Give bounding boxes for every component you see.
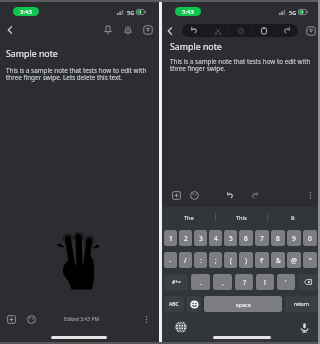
button[interactable]: Add [5, 313, 18, 326]
button[interactable]: ₹ [255, 252, 269, 268]
staticText: : [200, 256, 202, 265]
staticText: The [184, 214, 194, 221]
button[interactable]: This [215, 207, 267, 227]
staticText: ( [230, 256, 232, 265]
staticText: It [291, 214, 295, 221]
button[interactable]: ABC [164, 296, 184, 312]
staticText: ? [243, 278, 246, 287]
staticText: 5 [229, 234, 233, 243]
staticText: 2 [184, 234, 188, 243]
staticText: 6 [244, 234, 248, 243]
staticText: @ [291, 256, 297, 265]
button[interactable]: 8 [271, 230, 285, 246]
staticText: 3:43 [182, 8, 194, 16]
button[interactable]: ! [256, 274, 274, 290]
staticText: ABC [169, 301, 179, 308]
button[interactable]: Pin note [100, 22, 115, 37]
staticText: ; [215, 256, 217, 265]
button[interactable]: : [194, 252, 207, 268]
button[interactable]: Archive [303, 23, 318, 38]
button[interactable]: ( [224, 252, 237, 268]
button[interactable]: Backspace [298, 274, 318, 290]
button[interactable]: Background options [25, 313, 38, 326]
staticText: This [236, 214, 247, 221]
button[interactable]: 5 [224, 230, 237, 246]
staticText: . [200, 278, 202, 287]
button[interactable]: ? [235, 274, 253, 290]
staticText: 3 [199, 234, 203, 243]
button[interactable]: , [213, 274, 232, 290]
button[interactable]: Archive [140, 22, 155, 37]
button[interactable]: Copy [229, 24, 252, 37]
button[interactable]: Add [171, 190, 182, 201]
button[interactable]: 0 [303, 230, 317, 246]
button[interactable]: ) [239, 252, 253, 268]
button[interactable]: Background options [189, 190, 200, 201]
staticText: 5G [127, 9, 135, 17]
button[interactable]: 3 [194, 230, 207, 246]
staticText: 4 [214, 234, 218, 243]
staticText: & [276, 256, 281, 265]
button[interactable]: @ [287, 252, 301, 268]
staticText: 7 [260, 234, 264, 243]
button[interactable]: Back [2, 22, 17, 37]
button[interactable]: Voice input [297, 320, 311, 334]
staticText: 1 [169, 234, 173, 243]
button[interactable]: Reminder [120, 22, 135, 37]
button[interactable]: . [191, 274, 210, 290]
staticText: ' [285, 278, 287, 287]
button[interactable]: Undo [182, 24, 206, 37]
button[interactable]: It [267, 207, 319, 227]
button[interactable]: Redo [249, 190, 260, 201]
button[interactable]: More options [305, 190, 316, 201]
button[interactable]: return [285, 296, 318, 312]
button[interactable]: 4 [209, 230, 222, 246]
button[interactable]: 1 [164, 230, 177, 246]
button[interactable]: Emoji [187, 296, 201, 312]
staticText: 3:43 [20, 8, 32, 16]
staticText: space [236, 301, 251, 308]
button[interactable]: 7 [255, 230, 269, 246]
staticText: #+= [172, 279, 181, 286]
staticText: Sample note [6, 48, 58, 60]
button[interactable]: #+= [164, 274, 188, 290]
staticText: " [309, 256, 312, 265]
staticText: , [222, 278, 224, 287]
button[interactable]: - [164, 252, 177, 268]
button[interactable]: Cut [206, 24, 229, 37]
staticText: 0 [308, 234, 312, 243]
staticText: 8 [276, 234, 280, 243]
staticText: This is a sample note that tests how to … [170, 57, 315, 73]
button[interactable]: ; [209, 252, 222, 268]
button[interactable]: Redo [275, 24, 298, 37]
button[interactable]: Change keyboard [174, 320, 188, 334]
staticText: 9 [292, 234, 296, 243]
button[interactable]: " [303, 252, 317, 268]
button[interactable]: Undo [225, 190, 236, 201]
button[interactable]: The [162, 207, 215, 227]
button[interactable]: & [271, 252, 285, 268]
staticText: Edited 3:43 PM [64, 316, 99, 323]
staticText: ) [245, 256, 247, 265]
button[interactable]: 6 [239, 230, 253, 246]
button[interactable]: / [179, 252, 192, 268]
button[interactable]: 2 [179, 230, 192, 246]
staticText: 5G [289, 9, 297, 17]
staticText: ! [264, 278, 266, 287]
button[interactable]: space [204, 296, 282, 312]
staticText: return [294, 301, 309, 308]
staticText: - [169, 256, 172, 265]
button[interactable]: Paste [252, 24, 275, 37]
button[interactable]: More options [140, 313, 153, 326]
staticText: ₹ [260, 256, 264, 265]
button[interactable]: ' [277, 274, 295, 290]
button[interactable]: 9 [287, 230, 301, 246]
staticText: Sample note [170, 41, 222, 53]
button[interactable]: Back [162, 23, 177, 38]
staticText: / [184, 256, 187, 265]
staticText: This is a sample note that tests how to … [6, 66, 153, 82]
